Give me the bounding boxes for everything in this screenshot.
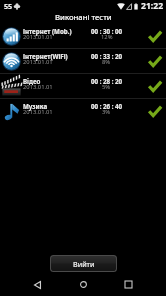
button[interactable]: Інтернет (Mob.) [0,24,166,49]
staticText: 00 : 33 : 20 [91,52,123,60]
staticText: Вийти [73,259,95,269]
staticText: 2013.01.01 [23,108,53,116]
staticText: 00 : 26 : 40 [91,102,123,110]
staticText: 2013.01.01 [23,33,53,41]
button[interactable]: Музика [0,99,166,124]
staticText: Інтернет (Mob.) [23,27,72,35]
staticText: 21:22 [141,0,164,12]
staticText: 8% [102,58,111,66]
staticText: 2013.01.01 [23,83,53,91]
button[interactable]: Back [29,276,46,293]
staticText: 5% [102,83,111,91]
staticText: 2013.01.01 [23,58,53,66]
staticText: 3% [102,108,111,116]
staticText: Виконані тести [55,12,112,23]
staticText: 00 : 28 : 20 [91,77,123,85]
staticText: 12% [101,33,113,41]
staticText: 00 : 30 : 00 [91,27,123,35]
button[interactable]: Інтернет(WiFi) [0,49,166,74]
button[interactable]: Вийти [51,256,116,271]
button[interactable]: Home [75,276,92,293]
staticText: Інтернет(WiFi) [23,52,68,60]
staticText: Музика [23,102,48,110]
staticText: Відео [23,77,41,85]
button[interactable]: Відео [0,74,166,99]
staticText: 55 [4,1,13,11]
button[interactable]: Recent apps [120,276,137,293]
